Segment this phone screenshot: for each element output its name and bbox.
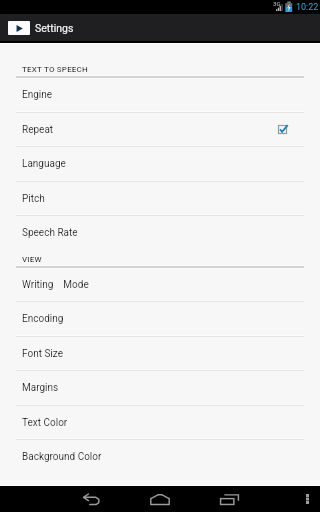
staticText: 10:22 [296,2,319,13]
button[interactable]: Font Size [0,336,320,370]
button[interactable]: Pitch [0,181,320,215]
button[interactable]: Recent apps [205,486,253,512]
button[interactable]: Text Color [0,405,320,439]
button[interactable]: Home [136,486,184,512]
staticText: Pitch [22,193,45,205]
staticText: Encoding [22,313,64,325]
button[interactable]: Writing Mode [0,267,320,301]
staticText: Background Color [22,451,102,463]
staticText: Margins [22,382,59,394]
button[interactable]: Settings [0,14,320,41]
button[interactable]: Back [68,486,116,512]
staticText: VIEW [22,255,42,264]
staticText: 3G [273,0,281,7]
staticText: Language [22,158,66,170]
button[interactable]: Repeat [0,112,320,146]
staticText: Engine [22,89,53,101]
button[interactable]: Background Color [0,439,320,473]
staticText: Speech Rate [22,227,78,239]
staticText: Font Size [22,348,63,360]
staticText: Writing Mode [22,279,89,291]
button[interactable]: Engine [0,77,320,111]
button[interactable]: Margins [0,370,320,404]
staticText: Text Color [22,417,68,429]
staticText: Settings [35,22,74,34]
staticText: Repeat [22,124,54,136]
button[interactable]: Speech Rate [0,215,320,249]
staticText: TEXT TO SPEECH [22,65,88,74]
button[interactable]: More options [283,486,320,512]
button[interactable]: Language [0,146,320,180]
button[interactable]: Encoding [0,301,320,335]
